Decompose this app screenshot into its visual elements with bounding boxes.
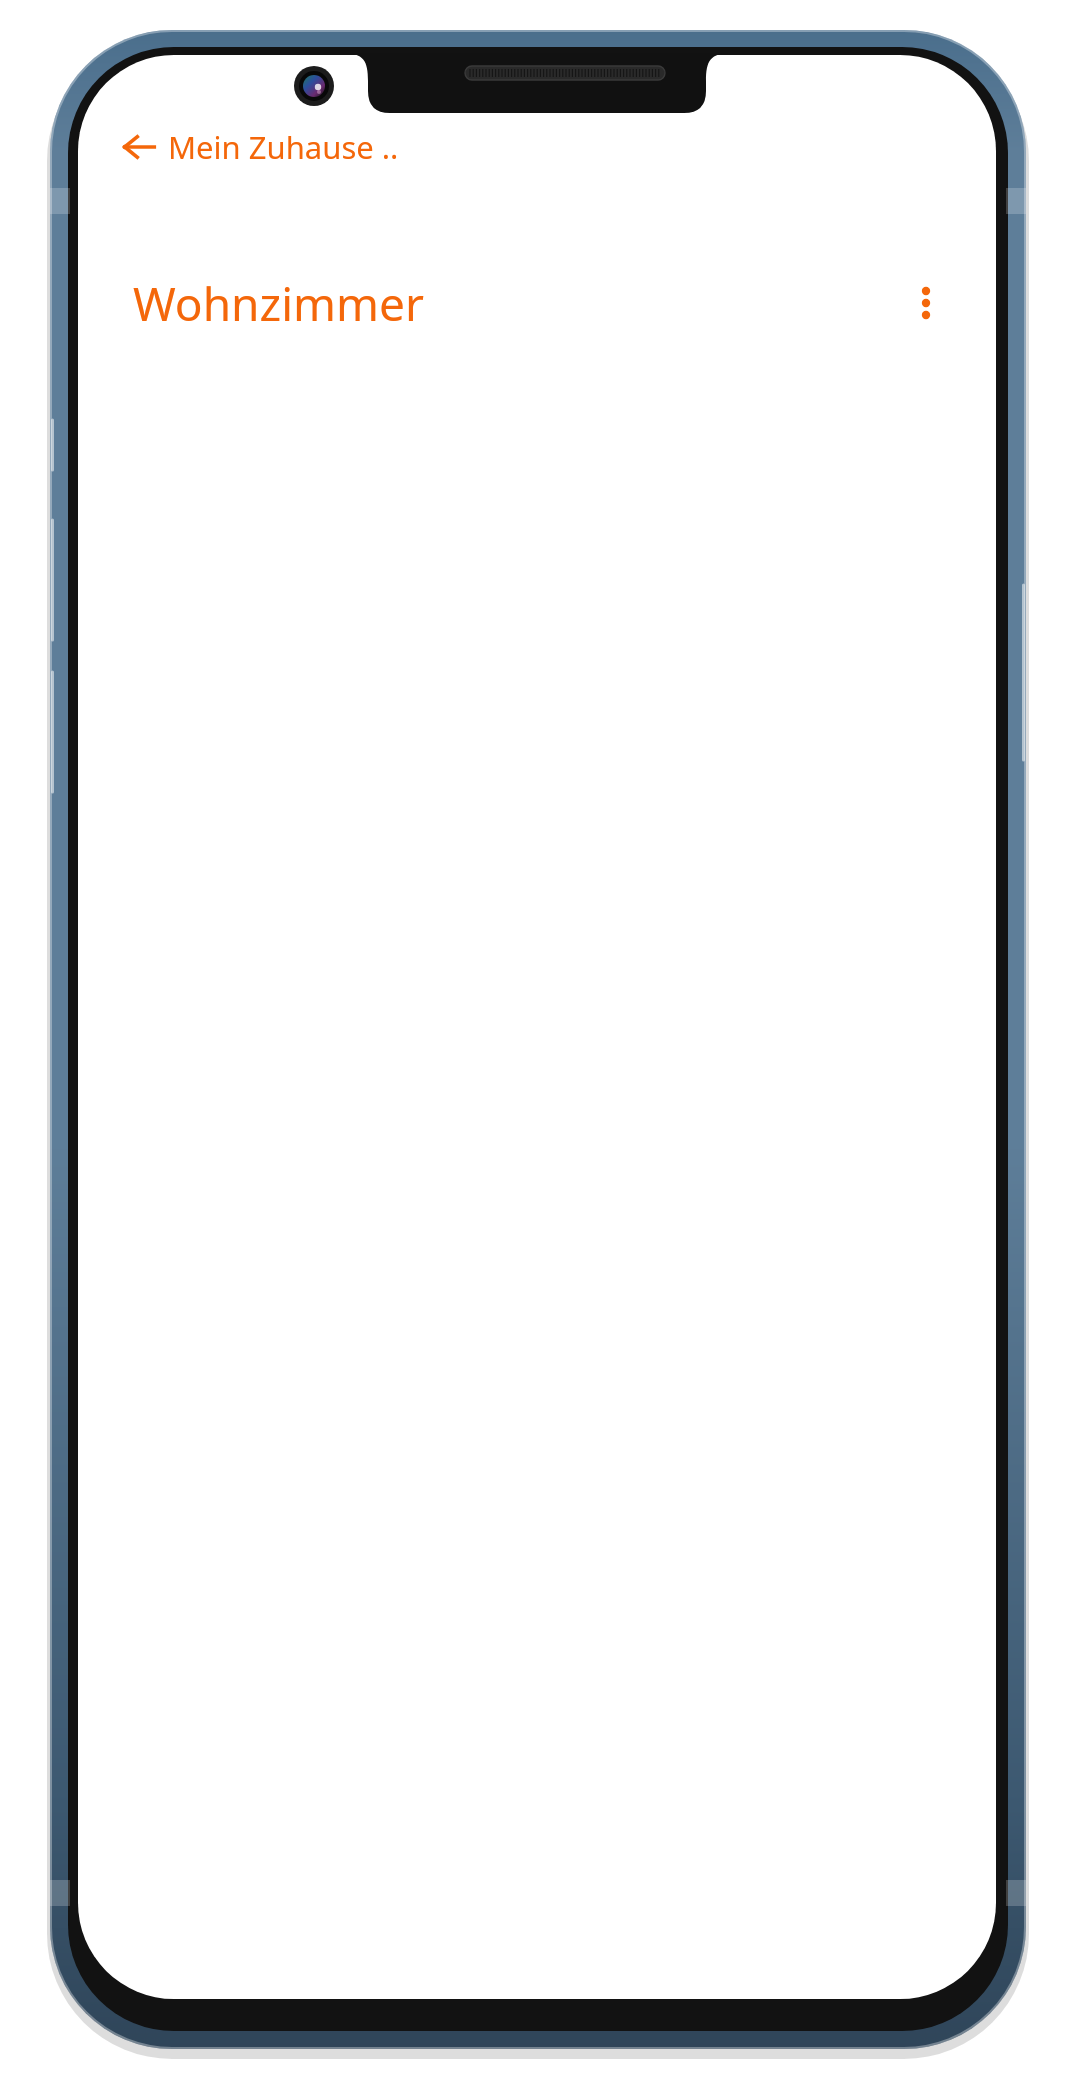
button[interactable]: Mein Zuhause .. xyxy=(112,119,409,175)
button[interactable]: Mehr Optionen xyxy=(878,255,974,351)
button[interactable]: Wohnzimmer xyxy=(78,248,900,358)
staticText: Wohnzimmer xyxy=(133,272,424,335)
staticText: Mein Zuhause .. xyxy=(168,126,399,168)
